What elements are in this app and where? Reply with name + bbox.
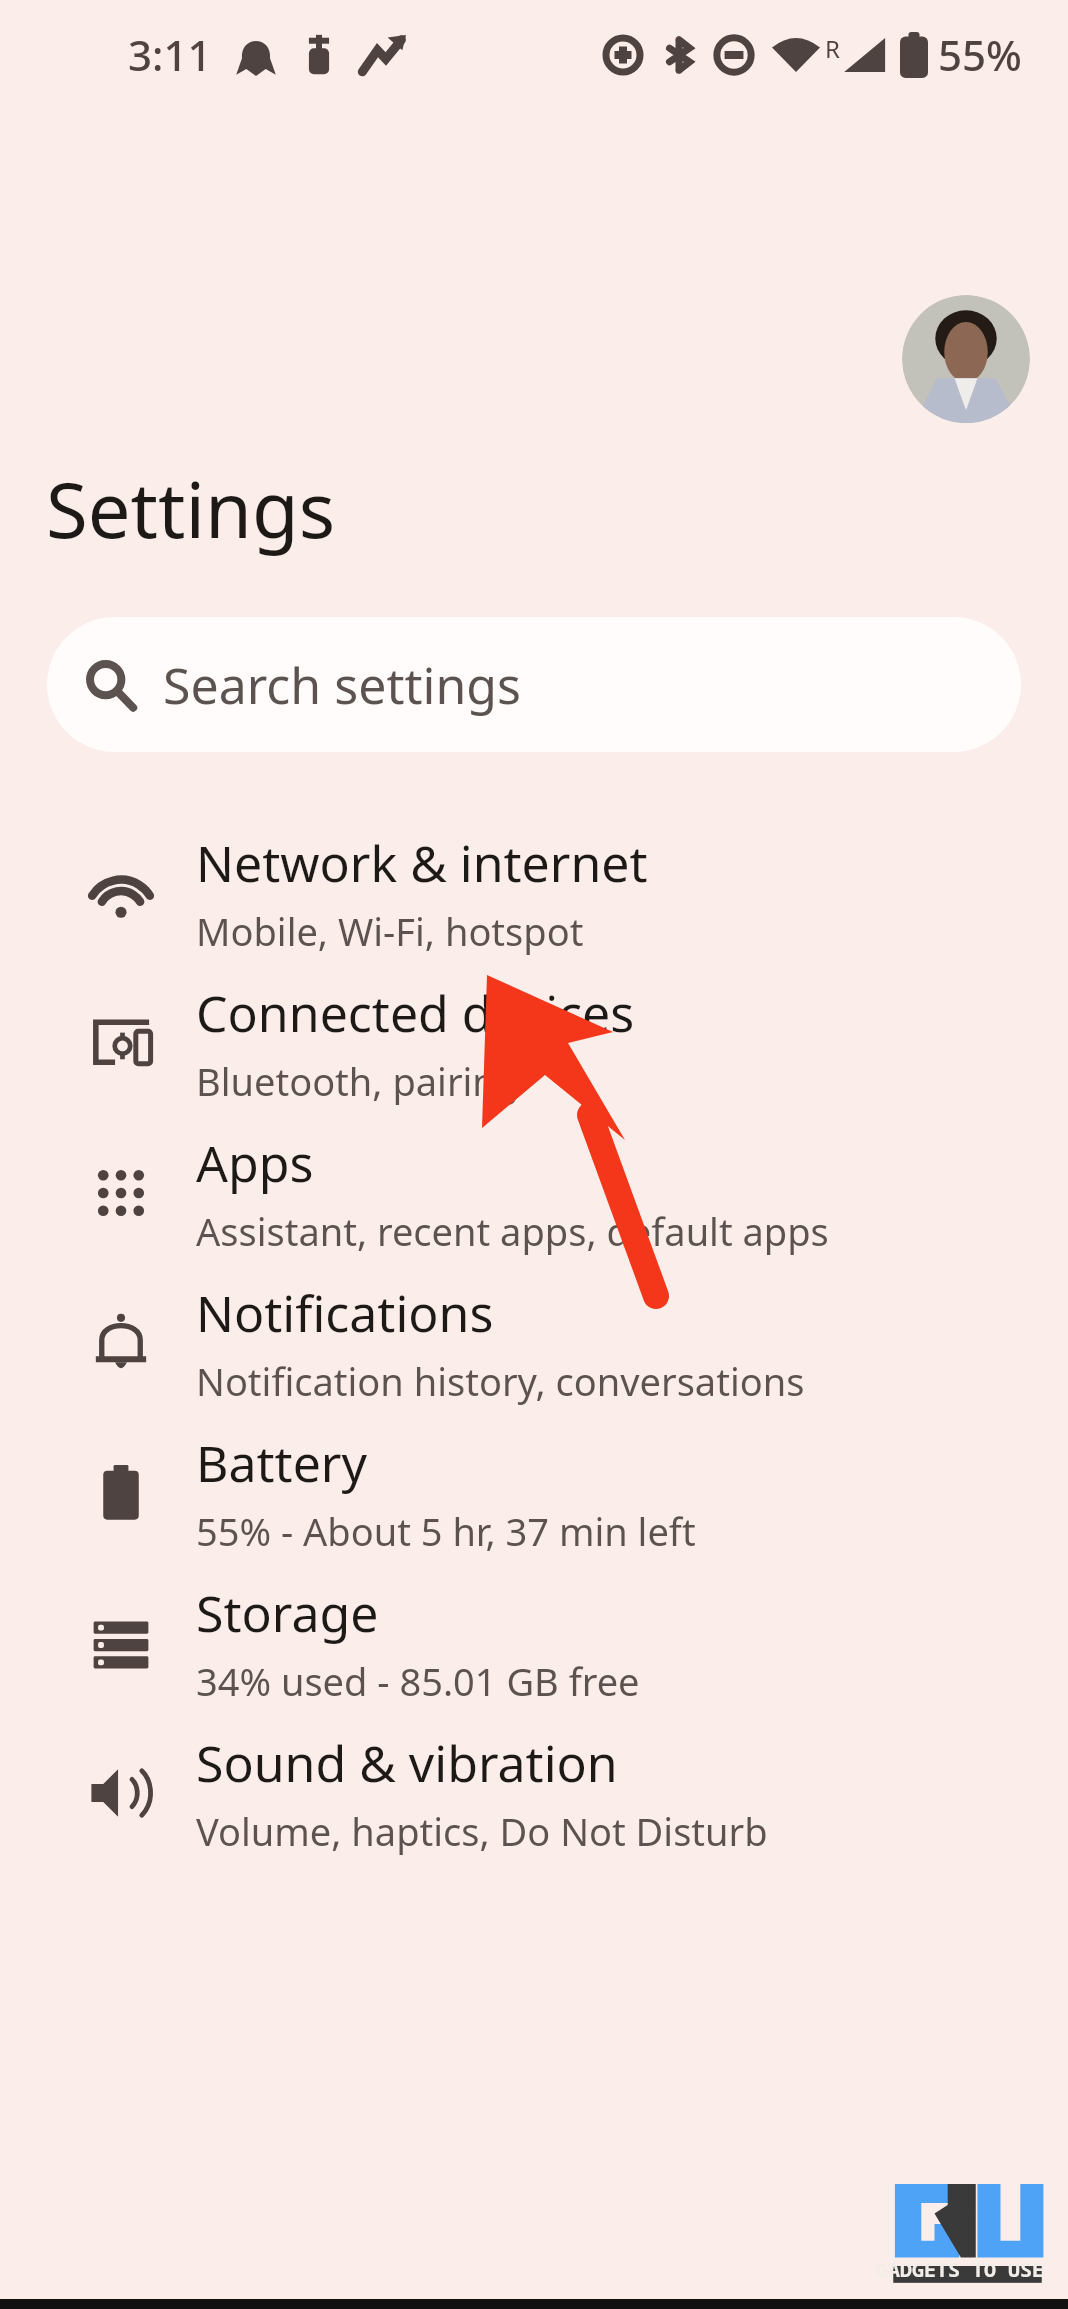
staticText: Notifications [196,1279,494,1347]
staticText: Search settings [163,651,521,719]
button[interactable]: Battery [0,1418,1068,1568]
staticText: R [825,32,840,65]
button[interactable]: Notifications [0,1268,1068,1418]
staticText: 34% used - 85.01 GB free [196,1655,640,1707]
staticText: 55% - About 5 hr, 37 min left [196,1505,696,1557]
staticText: GADGETS TO USE [876,2256,1044,2283]
staticText: 3:11 [128,26,212,83]
button[interactable]: Sound & vibration [0,1718,1068,1868]
staticText: Battery [196,1429,367,1497]
staticText: Settings [46,457,336,561]
staticText: Assistant, recent apps, default apps [196,1205,829,1257]
staticText: 55% [938,26,1022,83]
staticText: Sound & vibration [196,1729,618,1797]
staticText: Volume, haptics, Do Not Disturb [196,1805,768,1857]
staticText: Notification history, conversations [196,1355,805,1407]
staticText: Storage [196,1579,379,1647]
button[interactable]: Search settings [47,617,1021,752]
staticText: Connected devices [196,979,635,1047]
staticText: Network & internet [196,829,648,897]
button[interactable]: Account avatar [902,295,1030,423]
staticText: Apps [196,1129,314,1197]
button[interactable]: Apps [0,1118,1068,1268]
button[interactable]: Network & internet [0,818,1068,968]
staticText: Bluetooth, pairing [196,1055,520,1107]
button[interactable]: Storage [0,1568,1068,1718]
staticText: Mobile, Wi-Fi, hotspot [196,905,584,957]
button[interactable]: Connected devices [0,968,1068,1118]
